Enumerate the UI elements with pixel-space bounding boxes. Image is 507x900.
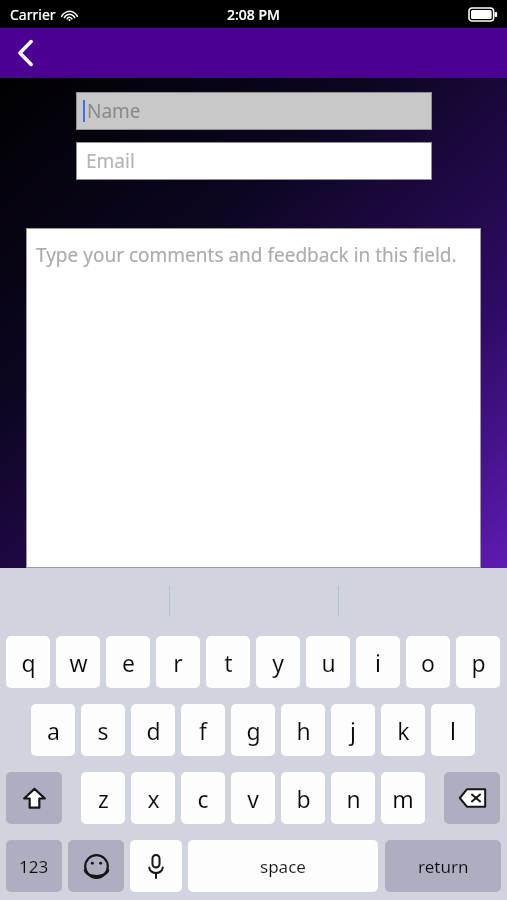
button[interactable]: Emoji bbox=[68, 840, 124, 892]
staticText: e bbox=[122, 647, 135, 678]
button[interactable]: m bbox=[381, 772, 425, 824]
staticText: r bbox=[173, 647, 183, 678]
button[interactable]: h bbox=[281, 704, 325, 756]
staticText: v bbox=[247, 783, 259, 814]
staticText: t bbox=[224, 647, 233, 678]
button[interactable]: w bbox=[56, 636, 100, 688]
staticText: o bbox=[421, 647, 435, 678]
staticText: k bbox=[397, 715, 410, 746]
staticText: f bbox=[199, 715, 207, 746]
staticText: Carrier bbox=[10, 5, 56, 24]
button[interactable]: r bbox=[156, 636, 200, 688]
button[interactable]: n bbox=[331, 772, 375, 824]
staticText: 2:08 PM bbox=[227, 5, 280, 24]
staticText: w bbox=[69, 647, 88, 678]
button[interactable]: d bbox=[131, 704, 175, 756]
button[interactable]: g bbox=[231, 704, 275, 756]
staticText: q bbox=[21, 647, 36, 678]
staticText: y bbox=[272, 647, 284, 678]
staticText: b bbox=[296, 783, 311, 814]
button[interactable]: return bbox=[385, 840, 501, 892]
staticText: m bbox=[392, 783, 414, 814]
staticText: Name bbox=[87, 98, 141, 124]
staticText: u bbox=[321, 647, 336, 678]
button[interactable]: b bbox=[281, 772, 325, 824]
button[interactable]: c bbox=[181, 772, 225, 824]
staticText: Type your comments and feedback in this … bbox=[36, 242, 457, 268]
button[interactable]: i bbox=[356, 636, 400, 688]
button[interactable]: v bbox=[231, 772, 275, 824]
button[interactable]: 123 bbox=[6, 840, 62, 892]
staticText: z bbox=[98, 783, 109, 814]
button[interactable]: q bbox=[6, 636, 50, 688]
button[interactable]: y bbox=[256, 636, 300, 688]
button[interactable]: a bbox=[31, 704, 75, 756]
button[interactable]: u bbox=[306, 636, 350, 688]
staticText: 123 bbox=[19, 855, 49, 878]
button[interactable]: o bbox=[406, 636, 450, 688]
staticText: x bbox=[147, 783, 160, 814]
staticText: s bbox=[97, 715, 109, 746]
button[interactable]: x bbox=[131, 772, 175, 824]
button[interactable]: Type your comments and feedback in this … bbox=[27, 229, 480, 567]
staticText: p bbox=[471, 647, 486, 678]
button[interactable]: p bbox=[456, 636, 500, 688]
staticText: a bbox=[47, 715, 60, 746]
button[interactable]: Email bbox=[77, 143, 431, 179]
staticText: Email bbox=[86, 148, 135, 174]
staticText: j bbox=[350, 715, 356, 746]
button[interactable]: f bbox=[181, 704, 225, 756]
button[interactable]: e bbox=[106, 636, 150, 688]
staticText: l bbox=[450, 715, 456, 746]
staticText: c bbox=[197, 783, 209, 814]
button[interactable]: z bbox=[81, 772, 125, 824]
button[interactable]: Name bbox=[77, 93, 431, 129]
staticText: return bbox=[418, 855, 469, 878]
staticText: n bbox=[346, 783, 361, 814]
staticText: space bbox=[260, 855, 306, 878]
button[interactable]: l bbox=[431, 704, 475, 756]
staticText: i bbox=[375, 647, 381, 678]
button[interactable]: k bbox=[381, 704, 425, 756]
button[interactable]: Dictation bbox=[130, 840, 182, 892]
button[interactable]: Delete bbox=[444, 772, 500, 824]
button[interactable]: s bbox=[81, 704, 125, 756]
button[interactable]: space bbox=[188, 840, 378, 892]
button[interactable]: t bbox=[206, 636, 250, 688]
staticText: d bbox=[146, 715, 161, 746]
button[interactable]: Shift bbox=[6, 772, 62, 824]
staticText: g bbox=[246, 715, 261, 746]
staticText: h bbox=[296, 715, 311, 746]
button[interactable]: j bbox=[331, 704, 375, 756]
button[interactable]: Back bbox=[0, 28, 52, 78]
